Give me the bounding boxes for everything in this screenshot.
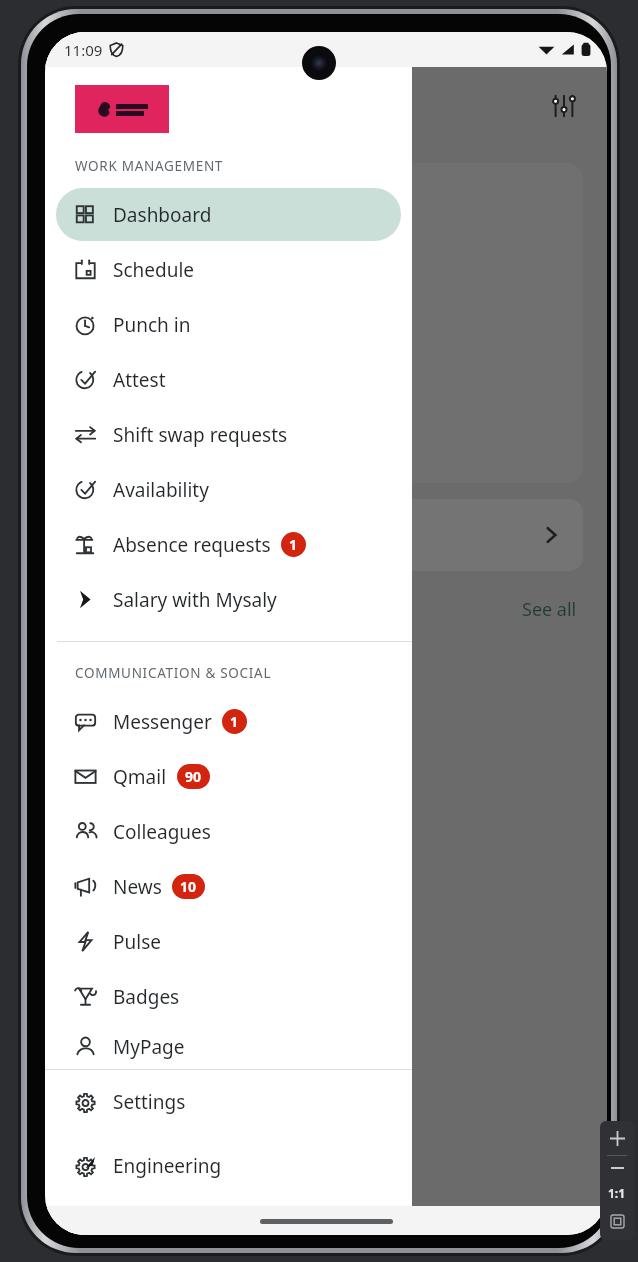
staticText: COMMUNICATION & SOCIAL xyxy=(75,664,272,682)
staticText: WORK MANAGEMENT xyxy=(75,157,224,175)
button[interactable]: Shift swap requests xyxy=(56,408,401,461)
staticText: See all xyxy=(522,597,577,622)
staticText: 90 xyxy=(185,767,202,786)
button[interactable]: Salary with Mysaly xyxy=(56,573,401,626)
button[interactable]: Punch in xyxy=(56,298,401,351)
staticText: 11:09 xyxy=(64,40,103,60)
button[interactable]: Qmail xyxy=(56,750,401,803)
button[interactable]: Attest xyxy=(56,353,401,406)
staticText: Absence requests xyxy=(113,532,271,558)
button[interactable]: Availability xyxy=(56,463,401,516)
staticText: Settings xyxy=(113,1089,186,1115)
staticText: Colleagues xyxy=(113,819,211,845)
button[interactable]: Pulse xyxy=(56,915,401,968)
staticText: Dashboard xyxy=(113,202,212,228)
staticText: Salary with Mysaly xyxy=(113,587,277,613)
staticText: Pulse xyxy=(113,929,161,955)
button[interactable]: News xyxy=(56,860,401,913)
button[interactable]: Filter xyxy=(549,91,579,121)
staticText: Shift swap requests xyxy=(113,422,288,448)
button[interactable]: Zoom out xyxy=(600,1156,634,1180)
button[interactable]: Zoom in xyxy=(600,1121,634,1155)
button[interactable]: Fit to window xyxy=(600,1206,634,1236)
staticText: Punch in xyxy=(113,312,191,338)
staticText: 1 xyxy=(230,712,239,731)
staticText: 1:1 xyxy=(608,1185,626,1201)
button[interactable]: Absence requests xyxy=(56,518,401,571)
staticText: MyPage xyxy=(113,1034,185,1060)
button[interactable]: Messenger xyxy=(56,695,401,748)
button[interactable]: Dashboard xyxy=(56,188,401,241)
staticText: Engineering xyxy=(113,1153,222,1179)
staticText: Schedule xyxy=(113,257,195,283)
button[interactable]: Badges xyxy=(56,970,401,1023)
staticText: 1 xyxy=(289,535,298,554)
button[interactable]: MyPage xyxy=(56,1025,401,1068)
staticText: offers xyxy=(49,702,99,727)
staticText: Attest xyxy=(113,367,166,393)
button[interactable]: Schedule xyxy=(56,243,401,296)
staticText: 10 xyxy=(180,877,197,896)
button[interactable]: See all xyxy=(518,593,581,626)
staticText: Messenger xyxy=(113,709,212,735)
staticText: Availability xyxy=(113,477,209,503)
staticText: Badges xyxy=(113,984,180,1010)
button[interactable]: Engineering xyxy=(56,1135,401,1197)
staticText: Qmail xyxy=(113,764,167,790)
staticText: News xyxy=(113,874,162,900)
button[interactable]: Settings xyxy=(56,1071,401,1133)
button[interactable]: Colleagues xyxy=(56,805,401,858)
button[interactable]: 1:1 xyxy=(600,1180,634,1206)
